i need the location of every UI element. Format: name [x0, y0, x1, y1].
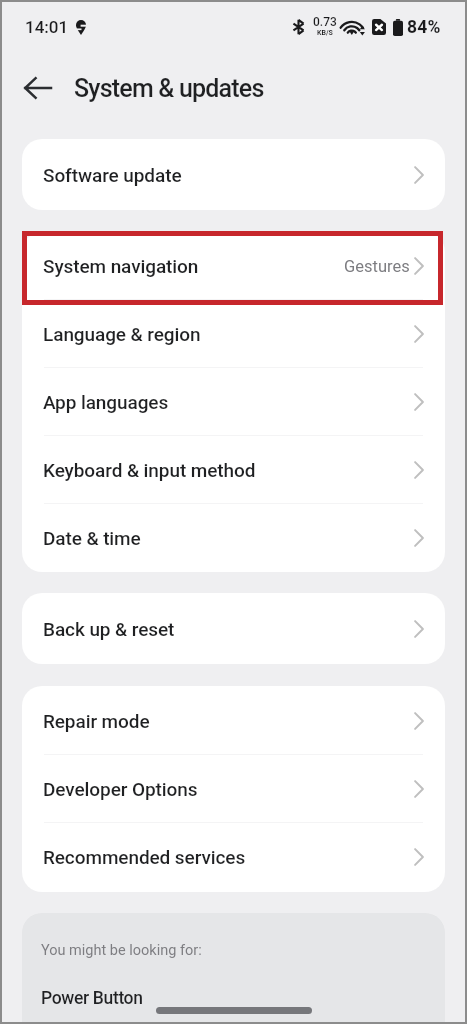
staticText: Repair mode [43, 710, 150, 732]
staticText: Developer Options [43, 778, 198, 800]
staticText: Recommended services [43, 846, 246, 868]
button[interactable]: Software update [22, 141, 445, 209]
button[interactable]: Back up & reset [22, 595, 445, 663]
staticText: App languages [43, 391, 169, 413]
staticText: System navigation [43, 255, 199, 277]
staticText: KB/S [317, 29, 333, 37]
staticText: Gestures [344, 257, 410, 276]
staticText: 14:01 [25, 17, 69, 37]
button[interactable]: Back [0, 58, 51, 118]
staticText: You might be looking for: [41, 942, 202, 959]
staticText: Date & time [43, 527, 141, 549]
staticText: 0.73 [313, 15, 337, 29]
staticText: Power Button [41, 988, 143, 1009]
staticText: 84% [407, 17, 441, 38]
button[interactable]: Repair mode [22, 687, 445, 755]
button[interactable]: Recommended services [22, 823, 445, 891]
button[interactable]: Keyboard & input method [22, 436, 445, 504]
staticText: Language & region [43, 323, 201, 345]
button[interactable]: Language & region [22, 300, 445, 368]
staticText: System & updates [74, 74, 264, 103]
button[interactable]: Developer Options [22, 755, 445, 823]
button[interactable]: Date & time [22, 504, 445, 572]
staticText: Back up & reset [43, 618, 175, 640]
staticText: Keyboard & input method [43, 459, 256, 481]
button[interactable]: App languages [22, 368, 445, 436]
staticText: Software update [43, 164, 182, 186]
button[interactable]: System navigation [22, 232, 445, 300]
